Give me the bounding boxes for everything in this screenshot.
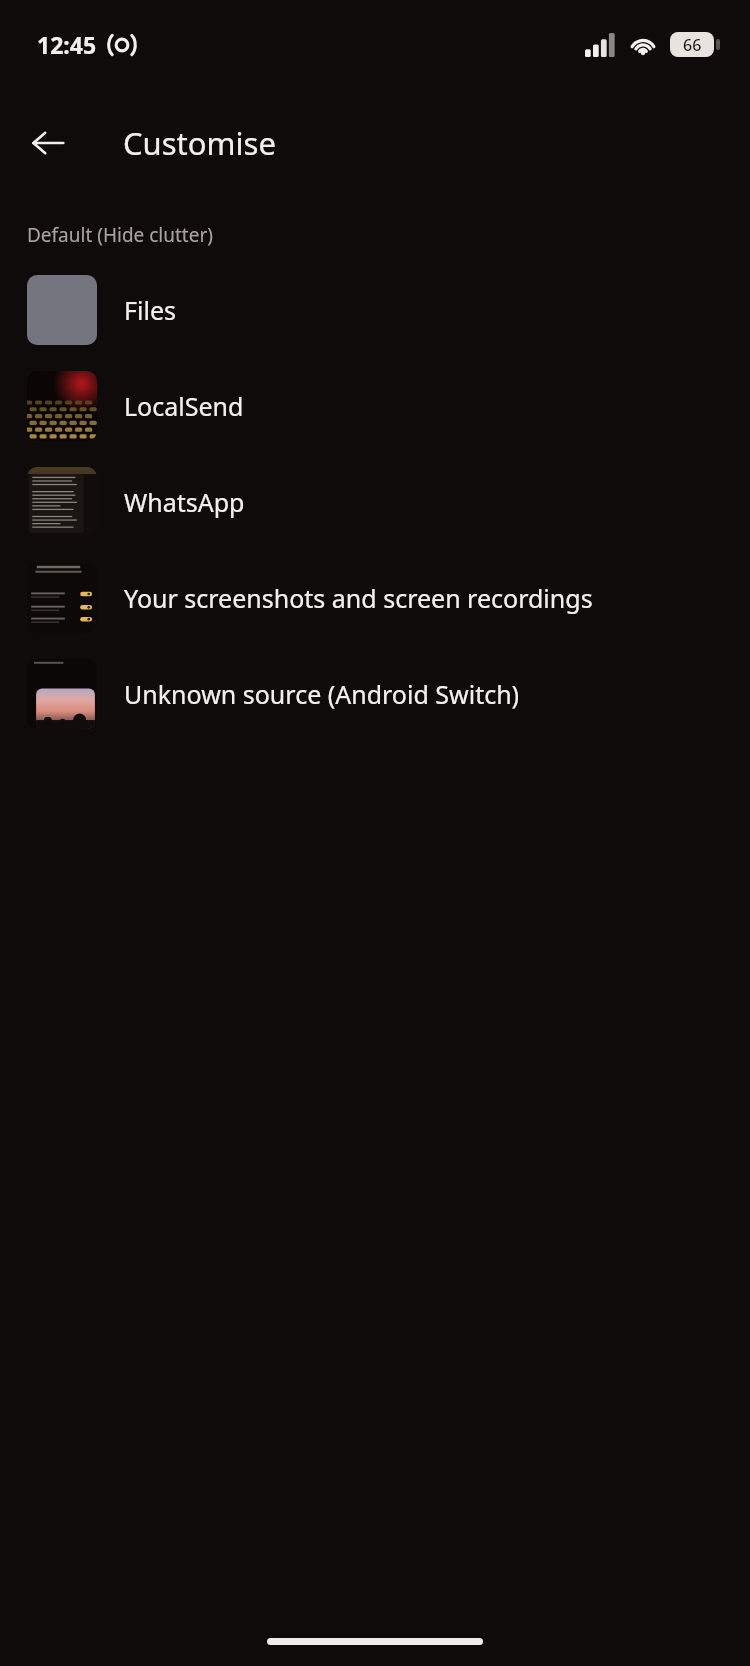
button[interactable]: Your screenshots and screen recordings: [0, 550, 750, 646]
staticText: Unknown source (Android Switch): [124, 677, 520, 711]
button[interactable]: Files: [0, 262, 750, 358]
staticText: WhatsApp: [124, 485, 245, 519]
staticText: Your screenshots and screen recordings: [124, 581, 593, 615]
staticText: Files: [124, 293, 176, 327]
staticText: LocalSend: [124, 389, 244, 423]
staticText: Default (Hide clutter): [27, 222, 213, 248]
button[interactable]: WhatsApp: [0, 454, 750, 550]
button[interactable]: Back: [14, 109, 82, 177]
staticText: Customise: [123, 122, 276, 164]
staticText: 66: [683, 34, 702, 56]
button[interactable]: LocalSend: [0, 358, 750, 454]
staticText: 12:45: [37, 29, 97, 60]
button[interactable]: Unknown source (Android Switch): [0, 646, 750, 742]
